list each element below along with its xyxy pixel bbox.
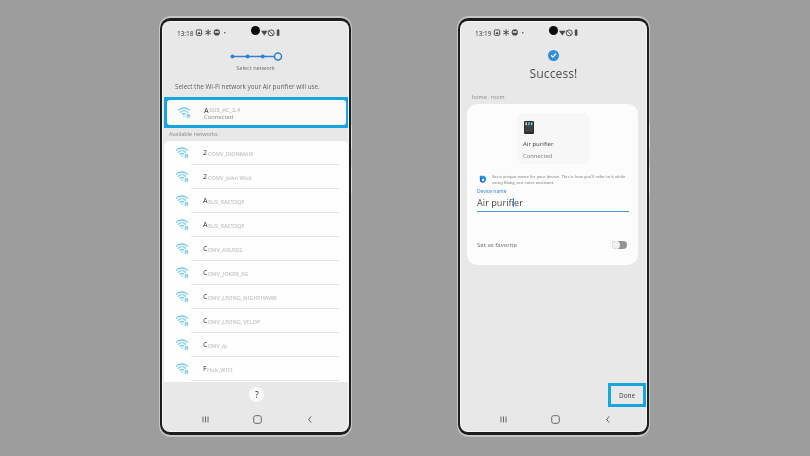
staticText: Select the Wi-Fi network your Air purifi… <box>175 82 320 91</box>
staticText: CONV_John Wick <box>208 174 252 181</box>
staticText: Set as favorite <box>477 241 517 249</box>
staticText: A <box>204 105 209 115</box>
button[interactable]: Back <box>300 410 318 428</box>
button[interactable]: Recents <box>196 410 214 428</box>
staticText: ONV_JOKER_5G <box>208 270 249 277</box>
staticText: CONV_IRONMAN <box>208 150 253 157</box>
staticText: Air purifier <box>477 196 523 208</box>
staticText: Available networks <box>169 130 218 137</box>
staticText: ONV_ASUS02 <box>208 246 243 253</box>
staticText: SUS_RAC53QE <box>208 222 245 229</box>
staticText: ONV_LIVING_NIGHTHAWK <box>208 294 277 301</box>
button[interactable]: Home <box>248 410 266 428</box>
staticText: Done <box>619 391 636 400</box>
button[interactable]: A <box>167 100 346 125</box>
staticText: Connected <box>204 113 234 121</box>
staticText: 13:18 <box>177 29 194 38</box>
staticText: Device name <box>477 188 507 195</box>
button[interactable]: F <box>164 357 348 381</box>
button[interactable]: C <box>164 309 348 333</box>
button[interactable]: 2 <box>164 165 348 189</box>
staticText: Success! <box>461 65 646 82</box>
button[interactable]: C <box>164 333 348 357</box>
staticText: Air purifier <box>523 140 554 148</box>
staticText: 13:19 <box>475 29 492 38</box>
staticText: ONV_LIVING_VELOP <box>208 318 261 325</box>
staticText: F <box>203 364 207 374</box>
staticText: C <box>203 340 208 350</box>
button[interactable]: Air purifier <box>517 113 590 164</box>
staticText: Hub_WIFI <box>207 366 233 373</box>
staticText: Set a unique name for your device. This … <box>492 174 633 185</box>
staticText: 2 <box>203 172 208 182</box>
button[interactable]: Help <box>249 387 264 402</box>
button[interactable]: Home <box>546 410 564 428</box>
button[interactable]: Back <box>598 410 616 428</box>
button[interactable]: C <box>164 237 348 261</box>
staticText: Select network <box>163 64 348 72</box>
button[interactable]: C <box>164 261 348 285</box>
button[interactable]: A <box>164 213 348 237</box>
staticText: Connected <box>523 152 553 160</box>
staticText: SUS_RAC53QE <box>208 198 245 205</box>
staticText: A <box>203 196 208 206</box>
button[interactable]: 2 <box>164 141 348 165</box>
button[interactable]: Recents <box>494 410 512 428</box>
staticText: SUS_AC_2.4 <box>209 106 241 114</box>
button[interactable]: A <box>164 189 348 213</box>
staticText: C <box>203 268 208 278</box>
button[interactable]: Set as favorite <box>467 235 638 255</box>
staticText: C <box>203 316 208 326</box>
staticText: ONV_ip <box>208 342 228 349</box>
staticText: 2 <box>203 148 208 158</box>
button[interactable]: Done <box>611 386 643 404</box>
staticText: home · room <box>472 93 505 100</box>
staticText: A <box>203 220 208 230</box>
button[interactable]: C <box>164 285 348 309</box>
staticText: C <box>203 292 208 302</box>
staticText: C <box>203 244 208 254</box>
staticText: ? <box>255 389 259 401</box>
